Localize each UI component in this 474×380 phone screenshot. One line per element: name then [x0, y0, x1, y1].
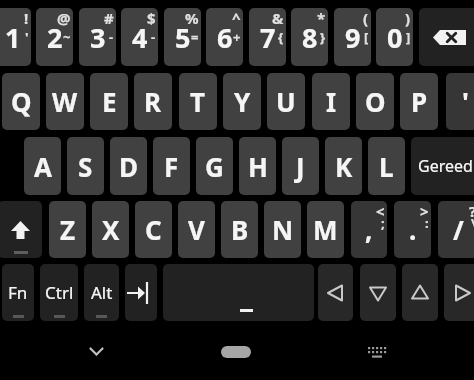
staticText: A — [34, 149, 52, 184]
button[interactable] — [444, 264, 474, 321]
staticText: U — [276, 84, 296, 119]
button[interactable]: . — [394, 201, 431, 258]
button[interactable] — [221, 346, 251, 358]
staticText: , — [365, 212, 373, 247]
staticText: R — [144, 84, 162, 119]
staticText: \ — [471, 214, 474, 232]
button[interactable]: 7 — [249, 8, 286, 66]
staticText: T — [190, 84, 206, 119]
staticText: ! — [24, 8, 29, 28]
button[interactable]: 4 — [121, 8, 158, 66]
button[interactable]: Alt — [84, 264, 119, 321]
staticText: $ — [147, 8, 156, 28]
button[interactable]: Q — [2, 73, 40, 130]
button[interactable]: Gereed — [411, 137, 474, 195]
button[interactable]: ' — [446, 73, 474, 130]
button[interactable]: 2 — [36, 8, 73, 66]
button[interactable]: F — [153, 137, 190, 195]
button[interactable]: S — [67, 137, 104, 195]
staticText: ) — [405, 8, 411, 28]
staticText: 3 — [90, 19, 106, 56]
staticText: / — [453, 212, 464, 247]
staticText: X — [102, 212, 120, 247]
button[interactable] — [402, 264, 438, 321]
staticText: > — [420, 201, 429, 221]
button[interactable]: 1 — [0, 8, 31, 66]
button[interactable]: G — [196, 137, 233, 195]
staticText: [ — [364, 28, 369, 46]
staticText: 7 — [260, 19, 276, 56]
staticText: G — [205, 149, 224, 184]
button[interactable]: 6 — [206, 8, 243, 66]
staticText: & — [272, 8, 284, 28]
button[interactable]: 5 — [164, 8, 201, 66]
staticText: P — [411, 84, 428, 119]
staticText: ^ — [232, 8, 241, 28]
staticText: I — [326, 84, 337, 119]
button[interactable] — [85, 343, 108, 360]
button[interactable]: V — [178, 201, 215, 258]
staticText: K — [335, 149, 353, 184]
button[interactable]: Y — [223, 73, 261, 130]
staticText: ~ — [63, 28, 71, 46]
staticText: J — [296, 149, 305, 184]
staticText: + — [233, 28, 241, 46]
button[interactable]: Fn — [2, 264, 34, 321]
button[interactable]: 9 — [334, 8, 371, 66]
staticText: M — [313, 212, 338, 247]
staticText: ; — [381, 214, 385, 232]
staticText: H — [248, 149, 268, 184]
button[interactable]: 0 — [376, 8, 413, 66]
button[interactable]: U — [267, 73, 305, 130]
button[interactable]: Ctrl — [40, 264, 78, 321]
button[interactable]: O — [356, 73, 394, 130]
staticText: L — [379, 149, 394, 184]
staticText: E — [102, 84, 117, 119]
staticText: % — [185, 8, 199, 28]
button[interactable]: A — [24, 137, 61, 195]
staticText: Ctrl — [45, 281, 74, 304]
button[interactable]: / — [438, 201, 474, 258]
button[interactable]: T — [179, 73, 217, 130]
button[interactable]: D — [110, 137, 147, 195]
staticText: 4 — [132, 19, 148, 56]
staticText: 6 — [217, 19, 233, 56]
button[interactable] — [318, 264, 353, 321]
button[interactable]: Z — [49, 201, 86, 258]
staticText: : — [425, 214, 429, 232]
button[interactable]: N — [264, 201, 301, 258]
button[interactable]: R — [134, 73, 172, 130]
button[interactable] — [0, 201, 42, 258]
button[interactable]: E — [90, 73, 128, 130]
button[interactable]: M — [307, 201, 344, 258]
button[interactable] — [419, 8, 474, 66]
staticText: { — [278, 28, 284, 46]
button[interactable]: J — [282, 137, 319, 195]
button[interactable]: 8 — [291, 8, 328, 66]
staticText: . — [409, 212, 417, 247]
button[interactable] — [360, 264, 396, 321]
button[interactable]: W — [46, 73, 84, 130]
staticText: O — [365, 84, 386, 119]
button[interactable] — [125, 264, 157, 321]
button[interactable] — [364, 343, 390, 363]
button[interactable]: 3 — [79, 8, 116, 66]
staticText: 1 — [5, 19, 21, 56]
staticText: * — [317, 8, 326, 28]
staticText: @ — [57, 8, 71, 28]
staticText: Q — [11, 84, 32, 119]
staticText: < — [376, 201, 385, 221]
staticText: # — [104, 8, 114, 28]
button[interactable] — [163, 264, 314, 321]
button[interactable]: B — [221, 201, 258, 258]
button[interactable]: L — [368, 137, 405, 195]
button[interactable]: K — [325, 137, 362, 195]
button[interactable]: H — [239, 137, 276, 195]
button[interactable]: C — [135, 201, 172, 258]
staticText: 9 — [345, 19, 361, 56]
button[interactable]: P — [400, 73, 438, 130]
button[interactable]: X — [92, 201, 129, 258]
staticText: Gereed — [418, 155, 473, 177]
button[interactable]: , — [351, 201, 387, 258]
button[interactable]: I — [312, 73, 350, 130]
